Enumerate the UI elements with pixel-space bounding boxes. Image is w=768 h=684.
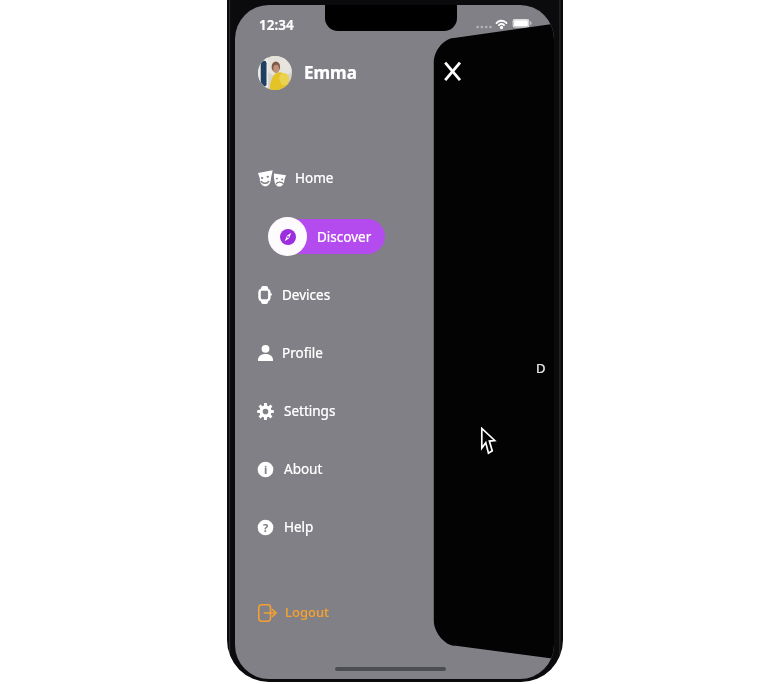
button[interactable]: Discover xyxy=(268,217,384,256)
button[interactable]: Devices xyxy=(247,277,407,313)
button[interactable]: ? xyxy=(247,509,407,545)
staticText: Home xyxy=(295,169,334,187)
staticText: Logout xyxy=(285,603,330,621)
button[interactable]: Home xyxy=(247,160,407,196)
button[interactable]: Logout xyxy=(252,598,362,626)
button[interactable]: Settings xyxy=(247,393,407,429)
button[interactable]: i xyxy=(247,451,407,487)
staticText: About xyxy=(284,460,323,478)
staticText: Profile xyxy=(282,344,323,362)
staticText: Help xyxy=(284,518,314,536)
staticText: Devices xyxy=(282,286,331,304)
staticText: i xyxy=(264,462,268,477)
staticText: 12:34 xyxy=(259,16,294,34)
staticText: D xyxy=(536,359,546,375)
button[interactable]: Close xyxy=(440,58,465,85)
staticText: ? xyxy=(263,520,269,535)
staticText: Settings xyxy=(284,402,336,420)
button[interactable]: Profile xyxy=(247,335,407,371)
staticText: Emma xyxy=(304,61,357,81)
staticText: Discover xyxy=(317,228,372,246)
button[interactable]: Emma xyxy=(253,52,365,94)
